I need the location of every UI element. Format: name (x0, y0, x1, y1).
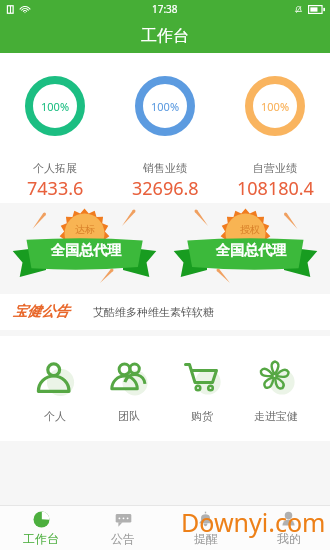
staticText: 全国总代理 (51, 242, 121, 260)
staticText: 授权 (240, 223, 260, 236)
button[interactable]: 我的 (247, 506, 330, 550)
staticText: 100% (151, 99, 180, 114)
button[interactable]: 个人 (18, 336, 91, 423)
staticText: 7433.6 (27, 176, 84, 201)
button[interactable]: 提醒 (164, 506, 247, 550)
staticText: 个人拓展 (33, 161, 77, 175)
staticText: 团队 (118, 409, 140, 423)
staticText: 17:38 (152, 2, 178, 16)
button[interactable]: 宝健公告 (0, 294, 330, 330)
button[interactable]: 走进宝健 (239, 336, 312, 423)
button[interactable]: 100% (220, 53, 330, 201)
button[interactable]: 公告 (82, 506, 164, 550)
staticText: 自营业绩 (253, 161, 297, 175)
staticText: 达标 (75, 223, 95, 236)
staticText: 108180.4 (237, 176, 314, 201)
button[interactable]: 工作台 (0, 506, 82, 550)
staticText: 走进宝健 (254, 409, 298, 423)
staticText: 100% (41, 99, 70, 114)
button[interactable]: 100% (110, 53, 220, 201)
staticText: 32696.8 (132, 176, 199, 201)
staticText: 艾酷维多种维生素锌软糖 (93, 305, 214, 319)
staticText: 公告 (111, 531, 135, 546)
staticText: 工作台 (141, 26, 189, 46)
staticText: 宝健公告 (13, 303, 69, 321)
staticText: 工作台 (23, 531, 59, 546)
staticText: 全国总代理 (216, 242, 286, 260)
button[interactable]: 100% (0, 53, 110, 201)
button[interactable]: 购货 (165, 336, 238, 423)
staticText: 100% (261, 99, 290, 114)
staticText: 我的 (277, 531, 301, 546)
staticText: 购货 (191, 409, 213, 423)
staticText: 个人 (44, 409, 66, 423)
staticText: 销售业绩 (143, 161, 187, 175)
staticText: Downyi.com (181, 505, 326, 539)
staticText: 提醒 (194, 531, 218, 546)
button[interactable]: 达标 (0, 208, 165, 291)
button[interactable]: 授权 (165, 208, 330, 291)
button[interactable]: 团队 (92, 336, 165, 423)
